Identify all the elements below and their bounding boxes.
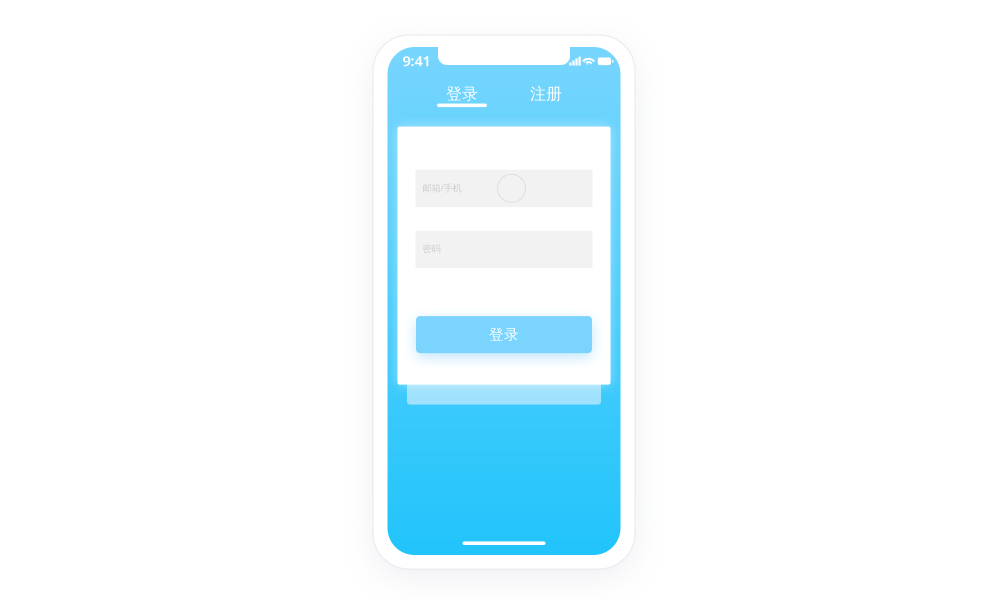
button[interactable]: 注册 [509, 86, 583, 107]
staticText: 登录 [446, 84, 478, 104]
staticText: 注册 [530, 84, 562, 104]
staticText: 密码 [422, 243, 440, 255]
button[interactable]: 登录 [416, 316, 592, 353]
staticText: 邮箱/手机 [422, 182, 461, 194]
staticText: 9:41 [402, 51, 430, 70]
button[interactable]: 登录 [425, 86, 499, 107]
staticText: 登录 [489, 326, 519, 344]
